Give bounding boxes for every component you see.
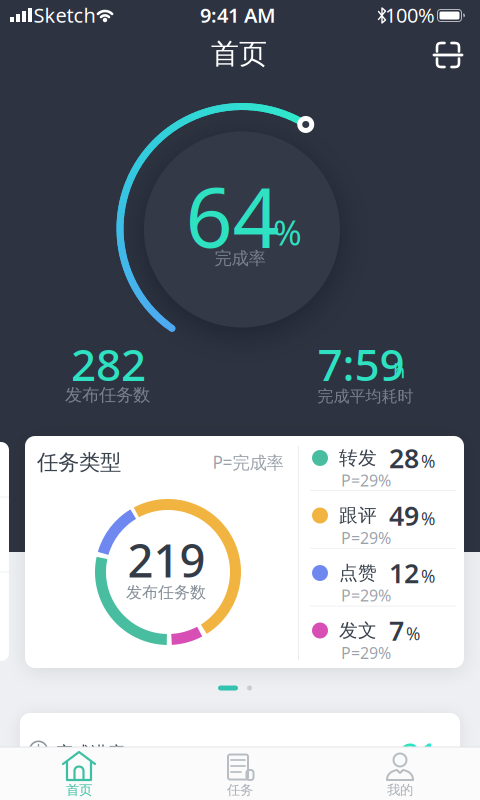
staticText: P=29% <box>341 642 391 663</box>
staticText: 49 <box>389 498 419 533</box>
staticText: % <box>406 622 420 645</box>
staticText: 跟评 <box>339 504 377 527</box>
staticText: 发文 <box>339 619 377 642</box>
staticText: 我的 <box>387 782 413 798</box>
staticText: P=29% <box>341 470 391 491</box>
staticText: 64 <box>185 161 279 270</box>
staticText: 完成平均耗时 <box>317 387 413 406</box>
button[interactable]: Scan <box>426 35 470 75</box>
staticText: 发布任务数 <box>65 384 150 406</box>
staticText: 任务类型 <box>37 449 121 476</box>
staticText: P=29% <box>341 527 391 548</box>
staticText: 首页 <box>66 782 92 798</box>
button[interactable]: 任务 <box>200 748 280 800</box>
button[interactable]: 我的 <box>360 748 440 800</box>
staticText: 完成进度 <box>56 742 124 764</box>
staticText: 任务 <box>227 782 253 798</box>
staticText: 首页 <box>211 37 267 71</box>
staticText: 28 <box>389 440 419 476</box>
staticText: 发布任务数 <box>126 583 206 602</box>
staticText: 100% <box>385 2 435 28</box>
staticText: 转发 <box>339 446 377 469</box>
staticText: P=29% <box>341 585 391 606</box>
button[interactable]: 完成进度 <box>20 713 460 783</box>
staticText: % <box>421 564 435 587</box>
staticText: 282 <box>71 335 146 393</box>
staticText: Sketch <box>33 2 95 28</box>
staticText: 7 <box>389 613 404 648</box>
staticText: 完成率 <box>214 248 265 269</box>
staticText: 7:59 <box>317 335 404 393</box>
staticText: % <box>273 209 302 255</box>
staticText: 219 <box>127 530 205 590</box>
staticText: % <box>421 507 435 530</box>
staticText: P=完成率 <box>212 450 283 473</box>
staticText: 点赞 <box>339 561 377 584</box>
staticText: 21 <box>401 733 437 775</box>
staticText: 12 <box>389 555 419 591</box>
staticText: 9:41 AM <box>200 2 276 28</box>
button[interactable]: 首页 <box>39 748 119 800</box>
button[interactable]: 任务类型 <box>25 436 464 668</box>
staticText: h <box>393 357 405 384</box>
staticText: % <box>421 449 435 472</box>
